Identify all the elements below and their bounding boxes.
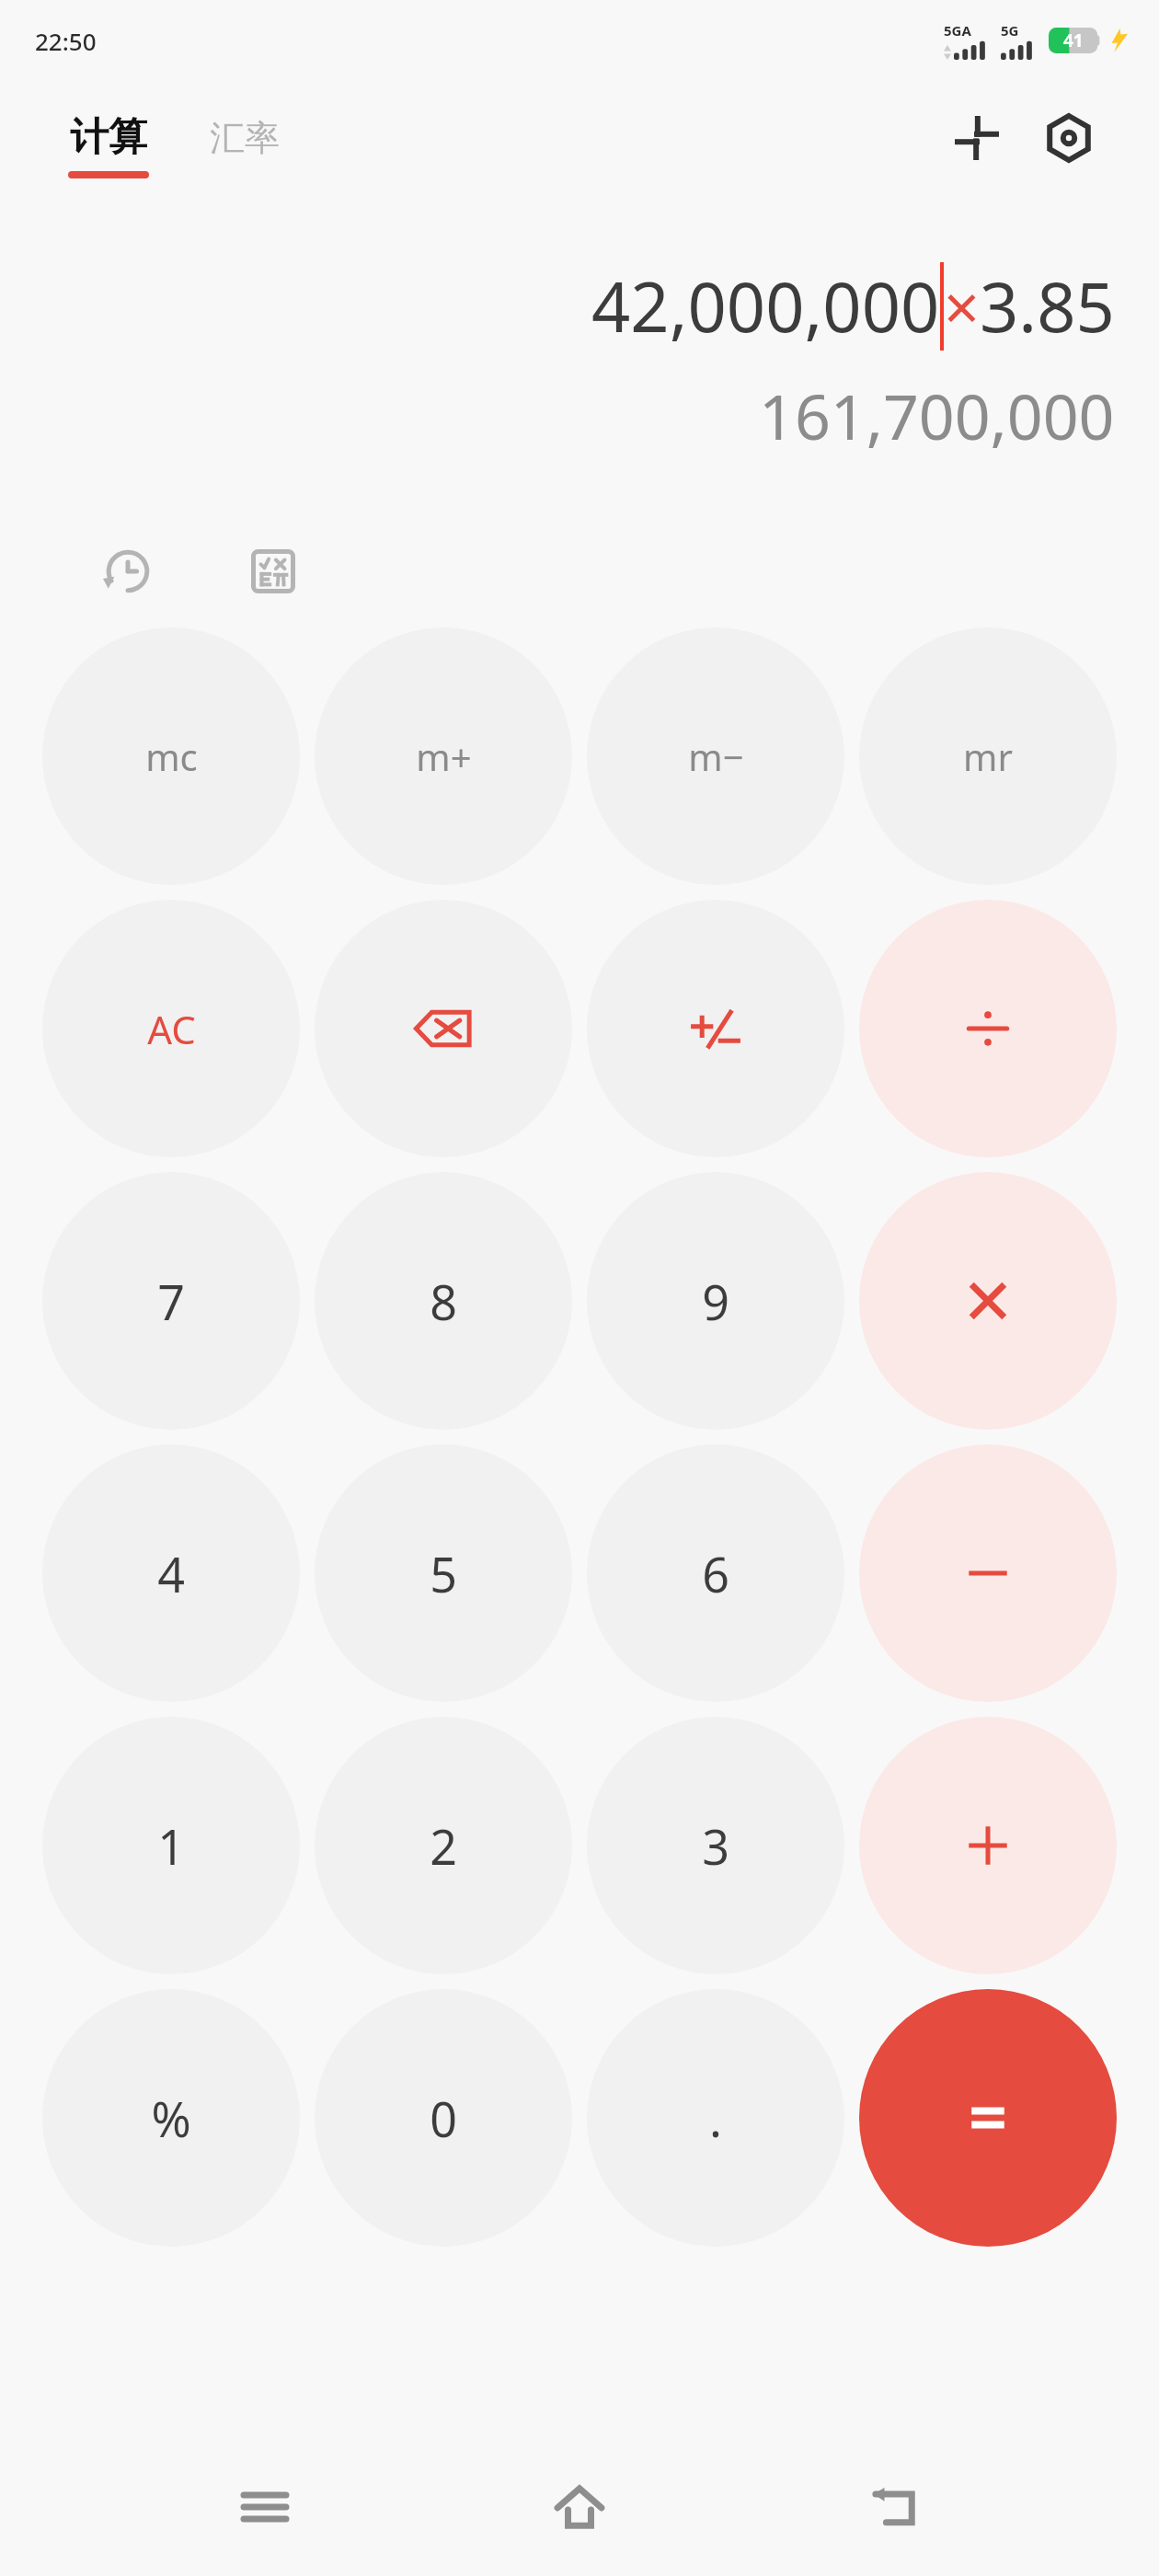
staticText: 161,700,000	[759, 373, 1115, 458]
button[interactable]: Home	[529, 2456, 630, 2558]
button[interactable]: 1	[42, 1717, 300, 1974]
staticText: 9	[702, 1269, 729, 1334]
button[interactable]: 0	[315, 1989, 572, 2247]
staticText: 3.85	[980, 259, 1115, 352]
button[interactable]: Plus minus	[587, 900, 844, 1157]
staticText: m+	[416, 731, 472, 781]
button[interactable]: Formulas	[237, 535, 309, 607]
button[interactable]: 3	[587, 1717, 844, 1974]
staticText: 22:50	[35, 25, 97, 57]
button[interactable]: 2	[315, 1717, 572, 1974]
button[interactable]: 汇率	[210, 116, 280, 177]
staticText: 5GA	[944, 21, 971, 40]
button[interactable]: Back	[844, 2456, 946, 2558]
staticText: 42,000,000	[591, 259, 940, 352]
button[interactable]: 5	[315, 1444, 572, 1702]
button[interactable]: 计算	[68, 113, 149, 178]
button[interactable]: Recents	[214, 2456, 316, 2558]
button[interactable]: m+	[315, 627, 572, 885]
button[interactable]: Multiply	[859, 1172, 1117, 1430]
button[interactable]: Collapse	[944, 105, 1010, 171]
staticText: 8	[430, 1269, 457, 1334]
staticText: mc	[145, 731, 198, 781]
button[interactable]: Minus	[859, 1444, 1117, 1702]
staticText: 5	[430, 1541, 457, 1606]
button[interactable]: 8	[315, 1172, 572, 1430]
button[interactable]: Divide	[859, 900, 1117, 1157]
button[interactable]: mc	[42, 627, 300, 885]
button[interactable]: 9	[587, 1172, 844, 1430]
button[interactable]: 4	[42, 1444, 300, 1702]
staticText: ×	[944, 263, 980, 349]
staticText: 计算	[70, 113, 147, 162]
staticText: 3	[702, 1813, 729, 1879]
button[interactable]: .	[587, 1989, 844, 2247]
button[interactable]: 6	[587, 1444, 844, 1702]
staticText: 6	[702, 1541, 729, 1606]
button[interactable]: Backspace	[315, 900, 572, 1157]
staticText: 2	[430, 1813, 457, 1879]
button[interactable]: m−	[587, 627, 844, 885]
staticText: mr	[963, 731, 1013, 781]
button[interactable]: Equals	[859, 1989, 1117, 2247]
button[interactable]: Plus	[859, 1717, 1117, 1974]
staticText: 汇率	[210, 116, 280, 160]
staticText: .	[709, 2086, 722, 2151]
button[interactable]: Settings	[1036, 105, 1102, 171]
button[interactable]: History	[92, 535, 164, 607]
staticText: m−	[688, 731, 744, 781]
button[interactable]: 7	[42, 1172, 300, 1430]
button[interactable]: %	[42, 1989, 300, 2247]
staticText: 41	[1063, 29, 1084, 52]
staticText: AC	[147, 1003, 196, 1055]
staticText: 0	[430, 2086, 457, 2151]
staticText: 4	[157, 1541, 185, 1606]
staticText: 1	[157, 1813, 185, 1879]
staticText: 5G	[1001, 21, 1019, 40]
button[interactable]: AC	[42, 900, 300, 1157]
button[interactable]: mr	[859, 627, 1117, 885]
staticText: %	[151, 2086, 191, 2151]
staticText: 7	[157, 1269, 185, 1334]
